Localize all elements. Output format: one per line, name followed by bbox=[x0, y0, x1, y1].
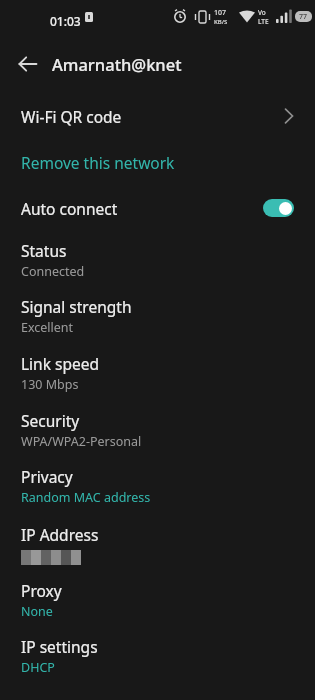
staticText: 77 bbox=[299, 12, 308, 22]
staticText: Remove this network bbox=[21, 152, 175, 173]
staticText: None bbox=[21, 603, 53, 620]
staticText: Link speed bbox=[21, 353, 99, 374]
staticText: 01:03 bbox=[50, 13, 81, 29]
staticText: Auto connect bbox=[21, 198, 118, 219]
staticText: Proxy bbox=[21, 580, 62, 601]
staticText: DHCP bbox=[21, 659, 55, 676]
staticText: Privacy bbox=[21, 466, 73, 487]
button[interactable]: Privacy bbox=[0, 458, 315, 514]
staticText: Vo bbox=[258, 8, 266, 17]
button[interactable]: Security bbox=[0, 402, 315, 458]
button[interactable]: Auto connect bbox=[0, 184, 315, 232]
button[interactable]: IP Address bbox=[0, 516, 315, 572]
staticText: WPA/WPA2-Personal bbox=[21, 433, 142, 450]
staticText: KB/S bbox=[214, 18, 228, 26]
staticText: LTE bbox=[258, 17, 269, 26]
staticText: IP Address bbox=[21, 524, 99, 545]
staticText: IP settings bbox=[21, 636, 98, 657]
button[interactable]: Wi-Fi QR code bbox=[0, 92, 315, 140]
staticText: 107 bbox=[214, 8, 227, 18]
button[interactable]: Link speed bbox=[0, 345, 315, 401]
button[interactable]: Status bbox=[0, 232, 315, 288]
staticText: Excellent bbox=[21, 319, 74, 336]
staticText: 130 Mbps bbox=[21, 376, 79, 393]
staticText: Amarnath@knet bbox=[52, 53, 182, 75]
button[interactable]: Signal strength bbox=[0, 288, 315, 344]
button[interactable]: IP settings bbox=[0, 628, 315, 684]
staticText: Signal strength bbox=[21, 296, 132, 317]
staticText: Security bbox=[21, 410, 80, 431]
staticText: Random MAC address bbox=[21, 489, 151, 506]
button[interactable]: Remove this network bbox=[0, 142, 315, 182]
button[interactable] bbox=[8, 44, 48, 84]
staticText: Wi-Fi QR code bbox=[21, 106, 122, 127]
button[interactable]: Proxy bbox=[0, 572, 315, 628]
staticText: Status bbox=[21, 240, 67, 261]
staticText: Connected bbox=[21, 263, 85, 280]
